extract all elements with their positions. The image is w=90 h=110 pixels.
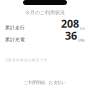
staticText: 208 bbox=[61, 16, 79, 31]
staticText: km bbox=[79, 26, 85, 31]
staticText: 今月のご利用状況 bbox=[25, 9, 65, 16]
staticText: 累計充電 bbox=[5, 37, 25, 43]
staticText: ※前月末時点の集計です bbox=[5, 57, 48, 62]
staticText: kWh bbox=[77, 38, 85, 43]
staticText: ご利用明細、お支払い bbox=[23, 80, 66, 85]
staticText: 36 bbox=[65, 28, 77, 43]
staticText: 累計走行 bbox=[5, 25, 25, 31]
